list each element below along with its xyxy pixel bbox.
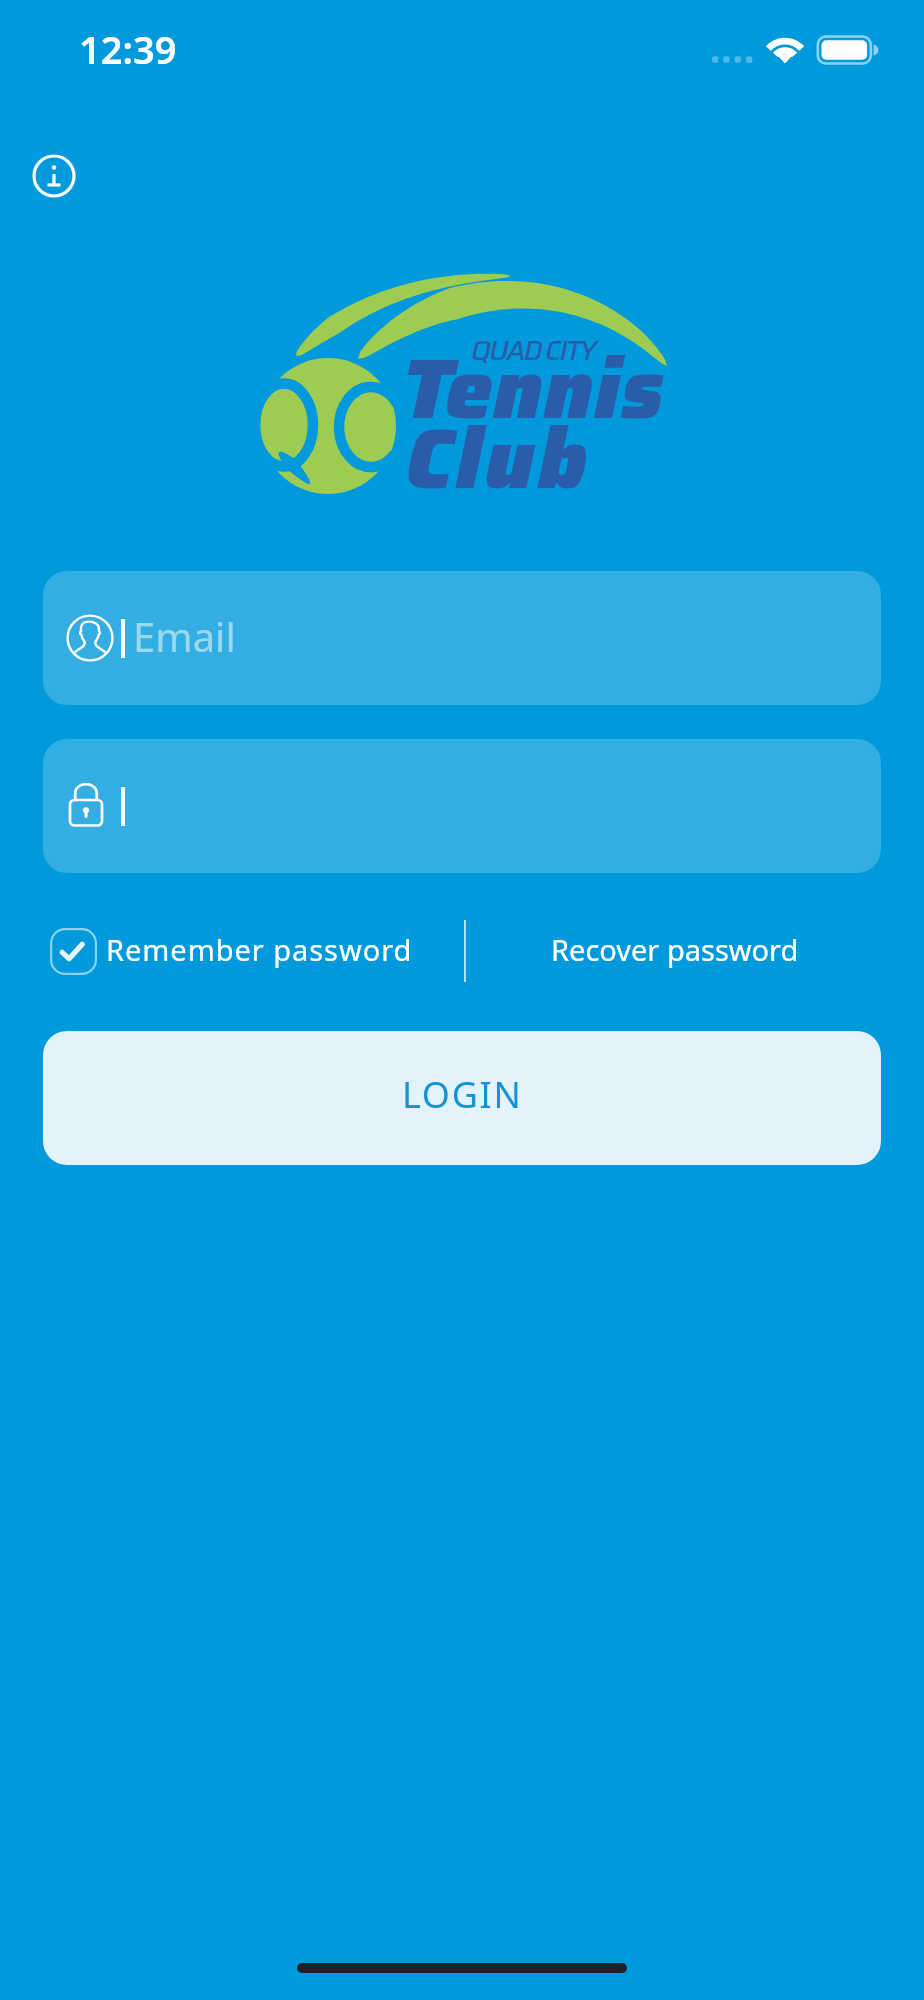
- button[interactable]: Recover password: [488, 917, 862, 981]
- button[interactable]: LOGIN: [43, 1031, 881, 1165]
- button[interactable]: [43, 739, 881, 873]
- staticText: Remember password: [106, 930, 413, 969]
- staticText: Club: [406, 393, 591, 525]
- staticText: Recover password: [551, 930, 799, 969]
- staticText: QUAD CITY: [471, 329, 595, 371]
- button[interactable]: Information: [26, 148, 82, 204]
- button[interactable]: Remember password: [40, 917, 418, 981]
- staticText: LOGIN: [402, 1070, 523, 1119]
- staticText: Tennis: [403, 323, 666, 455]
- staticText: Email: [133, 609, 236, 663]
- button[interactable]: Email: [43, 571, 881, 705]
- staticText: 12:39: [79, 23, 177, 75]
